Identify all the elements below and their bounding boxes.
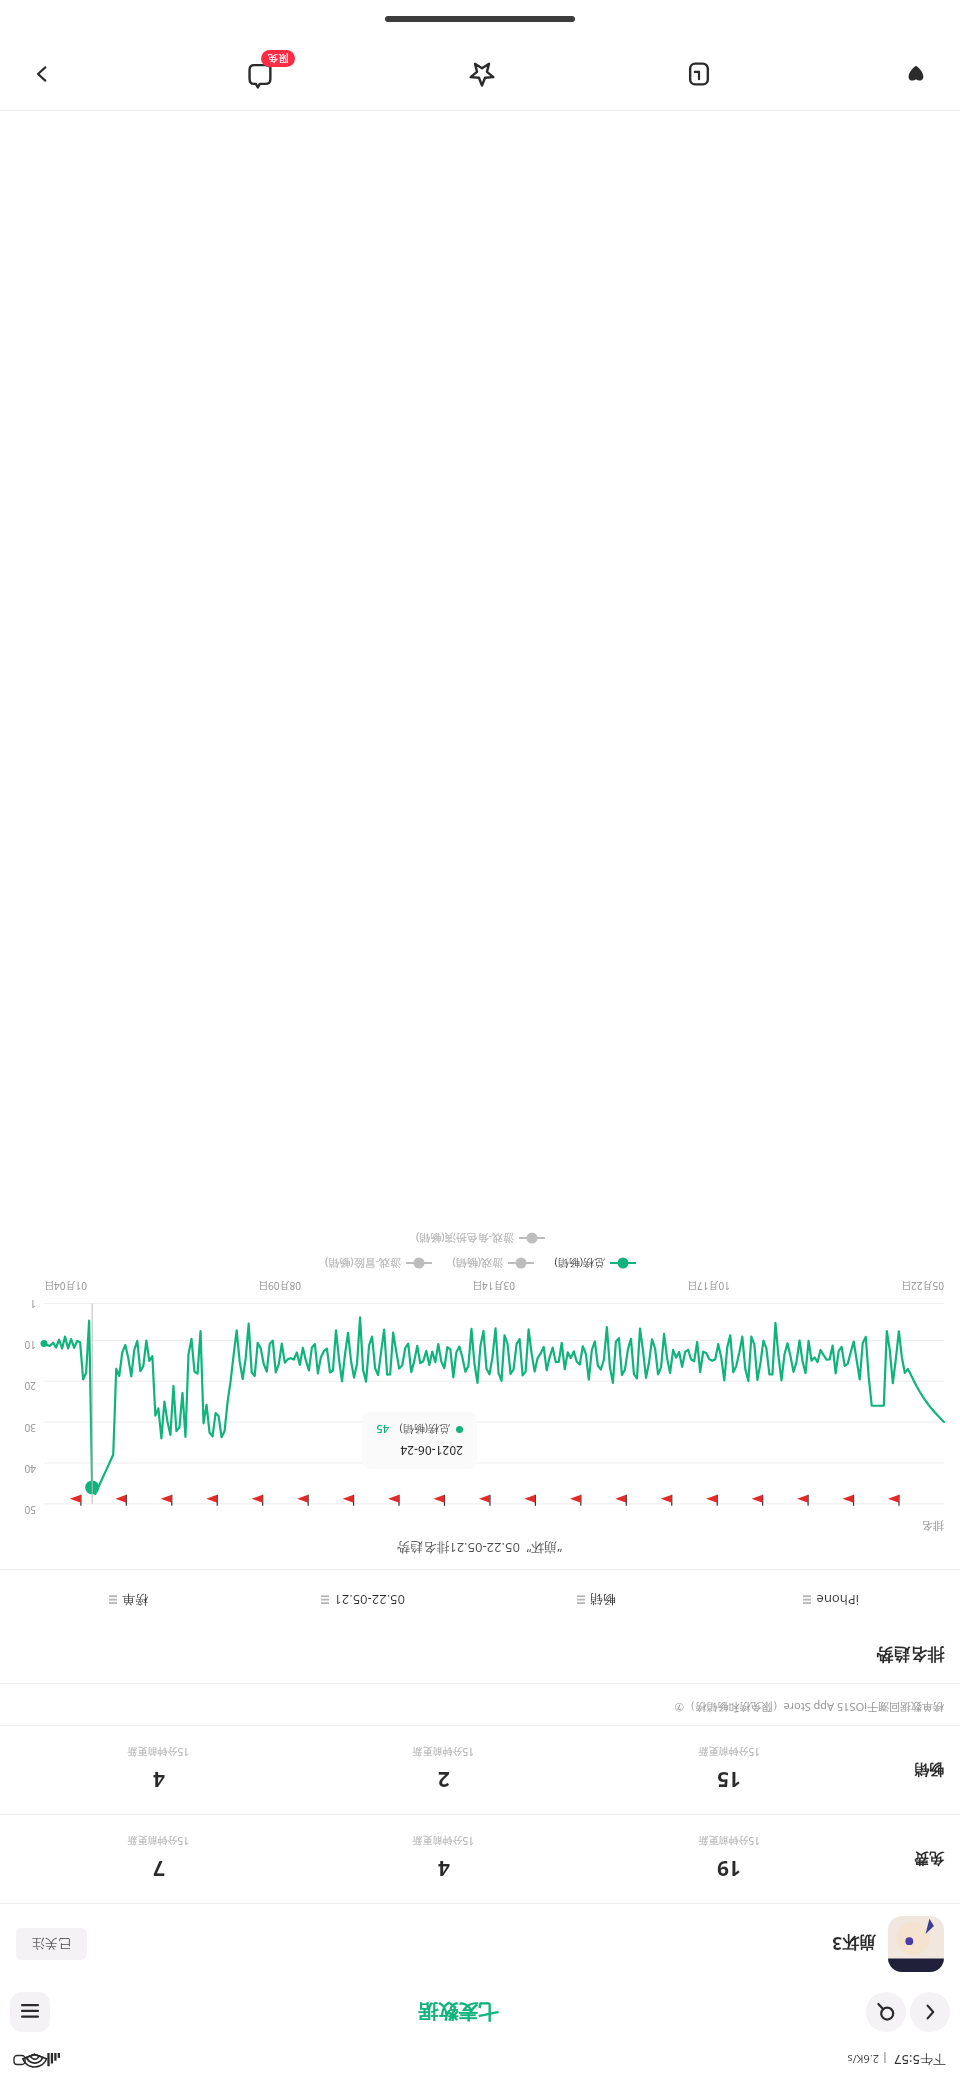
button[interactable]: 畅销 (480, 1592, 714, 1608)
staticText: 排名趋势 (876, 1644, 944, 1665)
staticText: 畅销 (590, 1592, 616, 1608)
button[interactable]: 游戏-冒险(畅销) (324, 1256, 432, 1271)
staticText: 已关注 (32, 1936, 71, 1952)
staticText: 10 (24, 1338, 36, 1352)
staticText: | 2.6K/s (847, 2052, 888, 2067)
button[interactable]: 游戏(畅销) (452, 1256, 534, 1271)
staticText: 免费 (914, 1849, 944, 1868)
button[interactable]: Calendar (675, 50, 723, 98)
staticText: 15分钟前更新 (412, 1834, 474, 1848)
button[interactable]: 4 (16, 1745, 301, 1794)
button[interactable]: 游戏-角色扮演(畅销) (415, 1231, 545, 1246)
staticText: 15分钟前更新 (412, 1745, 474, 1759)
staticText: 40 (24, 1462, 36, 1476)
button[interactable]: 限免消息 (233, 46, 289, 102)
button[interactable]: Search (866, 1992, 906, 2032)
button[interactable]: 05.22-05.21 (246, 1591, 480, 1609)
button[interactable]: 2 (301, 1745, 586, 1794)
staticText: 10月17日 (687, 1279, 730, 1293)
staticText: 30 (24, 1421, 36, 1435)
button[interactable]: 7 (16, 1834, 301, 1883)
staticText: 2 (437, 1765, 450, 1794)
staticText: 总榜(畅销) (399, 1422, 450, 1437)
button[interactable]: 已关注 (16, 1928, 87, 1960)
staticText: 50 (24, 1503, 36, 1517)
staticText: 03月14日 (472, 1279, 515, 1293)
staticText: 下午5:57 (894, 2051, 946, 2069)
staticText: 15分钟前更新 (698, 1834, 760, 1848)
button[interactable]: iPhone (714, 1591, 948, 1609)
staticText: 4 (437, 1854, 450, 1883)
staticText: 19 (716, 1854, 741, 1883)
button[interactable]: 15 (586, 1745, 872, 1794)
staticText: “崩坏” 05.22-05.21排名趋势 (397, 1539, 562, 1557)
staticText: 榜单 (122, 1592, 148, 1608)
staticText: 45 (376, 1422, 389, 1437)
staticText: 05.22-05.21 (334, 1591, 405, 1609)
button[interactable]: 4 (301, 1834, 586, 1883)
staticText: 01月04日 (44, 1279, 87, 1293)
staticText: 4 (152, 1765, 165, 1794)
staticText: 游戏-冒险(畅销) (324, 1256, 401, 1271)
button[interactable]: Apps (892, 50, 940, 98)
staticText: 05月22日 (901, 1279, 944, 1293)
staticText: 游戏-角色扮演(畅销) (415, 1231, 514, 1246)
staticText: 08月09日 (258, 1279, 301, 1293)
staticText: 总榜(畅销) (554, 1256, 605, 1271)
staticText: 15 (716, 1765, 741, 1794)
button[interactable]: 总榜(畅销) (554, 1256, 636, 1271)
staticText: 15分钟前更新 (127, 1834, 189, 1848)
staticText: 畅销 (914, 1760, 944, 1779)
staticText: 15分钟前更新 (698, 1745, 760, 1759)
staticText: 崩坏3 (832, 1932, 876, 1955)
button[interactable]: More (20, 52, 64, 96)
staticText: 20 (24, 1379, 36, 1393)
staticText: 1 (30, 1297, 36, 1311)
staticText: 排名 (922, 1519, 944, 1533)
button[interactable]: Menu (10, 1992, 50, 2032)
staticText: 15分钟前更新 (127, 1745, 189, 1759)
button[interactable]: Back (910, 1992, 950, 2032)
button[interactable]: 榜单 (12, 1592, 246, 1608)
staticText: 榜单数据回溯于iOS15 App Store（限免榜和畅销榜）⑦ (16, 1700, 944, 1715)
staticText: 七麦数据 (418, 1999, 498, 2024)
staticText: 游戏(畅销) (452, 1256, 503, 1271)
button[interactable] (888, 1916, 944, 1972)
staticText: 2021-06-24 (400, 1443, 463, 1459)
staticText: iPhone (816, 1591, 859, 1609)
button[interactable]: 19 (586, 1834, 872, 1883)
button[interactable]: Favorites (458, 50, 506, 98)
staticText: 限免 (268, 52, 288, 65)
staticText: 7 (152, 1854, 165, 1883)
